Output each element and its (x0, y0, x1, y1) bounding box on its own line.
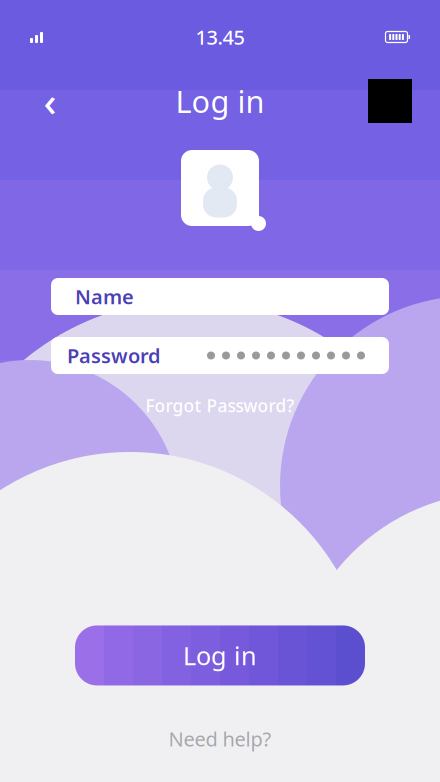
staticText: Log in (175, 81, 264, 121)
staticText: 13.45 (195, 24, 244, 50)
button[interactable]: Password (51, 337, 389, 374)
staticText: Log in (183, 639, 257, 672)
button[interactable]: Back (28, 79, 72, 123)
button[interactable]: Name (51, 278, 389, 315)
button[interactable]: Log in (75, 625, 365, 685)
staticText: ‹ (43, 74, 56, 127)
staticText: Name (75, 283, 134, 310)
staticText: Password (67, 342, 161, 369)
staticText: Need help? (168, 725, 271, 752)
button[interactable]: Need help? (154, 719, 285, 758)
staticText: Forgot Password? (145, 394, 294, 417)
button[interactable]: Forgot Password? (133, 388, 306, 423)
